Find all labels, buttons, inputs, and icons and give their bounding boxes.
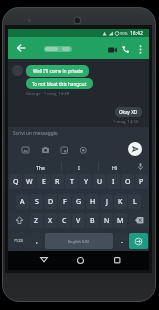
- staticText: V: [76, 216, 81, 226]
- staticText: .: [121, 236, 123, 246]
- staticText: J: [106, 197, 108, 207]
- button[interactable]: English (US): [45, 233, 113, 249]
- staticText: M: [117, 216, 124, 226]
- button[interactable]: W: [23, 174, 36, 189]
- staticText: I: [78, 164, 80, 171]
- staticText: O: [125, 177, 131, 187]
- staticText: K: [118, 197, 123, 207]
- button[interactable]: N: [100, 213, 113, 228]
- button[interactable]: O: [121, 174, 134, 189]
- button[interactable]: H: [86, 194, 99, 209]
- button[interactable]: [119, 43, 132, 56]
- button[interactable]: [129, 233, 148, 249]
- staticText: 1 mag, 14:50: [113, 119, 139, 125]
- button[interactable]: S: [30, 194, 43, 209]
- button[interactable]: F: [58, 194, 71, 209]
- staticText: 16:42: [130, 30, 143, 37]
- staticText: English (US): [68, 239, 90, 244]
- button[interactable]: E: [37, 174, 50, 189]
- staticText: ,: [36, 236, 38, 246]
- staticText: Okay XD: [119, 109, 138, 115]
- staticText: George · 1 mag, 14:48: [26, 91, 70, 97]
- button[interactable]: L: [128, 194, 141, 209]
- staticText: Q: [13, 177, 19, 187]
- button[interactable]: R: [51, 174, 64, 189]
- button[interactable]: [78, 145, 88, 155]
- button[interactable]: T: [65, 174, 78, 189]
- staticText: 90%: [120, 31, 128, 36]
- staticText: The: [36, 164, 46, 171]
- staticText: B: [90, 216, 95, 226]
- button[interactable]: ?123: [9, 233, 29, 249]
- button[interactable]: Z: [30, 213, 43, 228]
- button[interactable]: P: [135, 174, 148, 189]
- staticText: I: [112, 177, 115, 187]
- button[interactable]: ,: [30, 233, 43, 249]
- button[interactable]: V: [72, 213, 85, 228]
- staticText: C: [62, 216, 67, 226]
- button[interactable]: U: [93, 174, 106, 189]
- staticText: X: [48, 216, 53, 226]
- button[interactable]: G: [72, 194, 85, 209]
- staticText: To not bloat this hangout: [32, 81, 87, 87]
- button[interactable]: .: [115, 233, 128, 249]
- button[interactable]: To not bloat this hangout: [26, 78, 93, 89]
- staticText: R: [55, 177, 60, 187]
- staticText: Y: [84, 177, 88, 187]
- button[interactable]: [128, 142, 142, 156]
- button[interactable]: B: [86, 213, 99, 228]
- staticText: S: [35, 197, 39, 207]
- staticText: G: [76, 197, 82, 207]
- button[interactable]: X: [44, 213, 57, 228]
- staticText: H: [90, 197, 96, 207]
- button[interactable]: Okay XD: [115, 107, 142, 117]
- button[interactable]: [9, 213, 29, 228]
- button[interactable]: [38, 254, 50, 266]
- button[interactable]: [105, 43, 119, 56]
- button[interactable]: [129, 213, 149, 228]
- button[interactable]: J: [100, 194, 113, 209]
- button[interactable]: [14, 41, 28, 54]
- button[interactable]: Y: [79, 174, 92, 189]
- staticText: Z: [34, 216, 39, 226]
- staticText: D: [48, 197, 54, 207]
- staticText: F: [63, 197, 67, 207]
- staticText: Scrivi un messaggio: [13, 130, 58, 137]
- staticText: Hi: [112, 164, 118, 171]
- staticText: T: [70, 177, 74, 187]
- staticText: E: [42, 177, 46, 187]
- button[interactable]: [135, 43, 146, 56]
- button[interactable]: D: [44, 194, 57, 209]
- staticText: L: [133, 197, 137, 207]
- staticText: A: [20, 197, 25, 207]
- button[interactable]: K: [114, 194, 127, 209]
- button[interactable]: C: [58, 213, 71, 228]
- button[interactable]: [111, 254, 123, 266]
- staticText: ?123: [14, 238, 24, 244]
- button[interactable]: [59, 145, 69, 155]
- button[interactable]: M: [114, 213, 127, 228]
- staticText: U: [97, 177, 103, 187]
- button[interactable]: [40, 145, 50, 155]
- button[interactable]: A: [16, 194, 29, 209]
- button[interactable]: Q: [9, 174, 22, 189]
- button[interactable]: [20, 145, 30, 155]
- staticText: N: [104, 216, 110, 226]
- staticText: Well I'll come in private: [33, 68, 83, 74]
- button[interactable]: Well I'll come in private: [26, 65, 89, 77]
- staticText: W: [26, 177, 33, 187]
- staticText: P: [139, 177, 144, 187]
- button[interactable]: I: [107, 174, 120, 189]
- button[interactable]: [74, 254, 86, 266]
